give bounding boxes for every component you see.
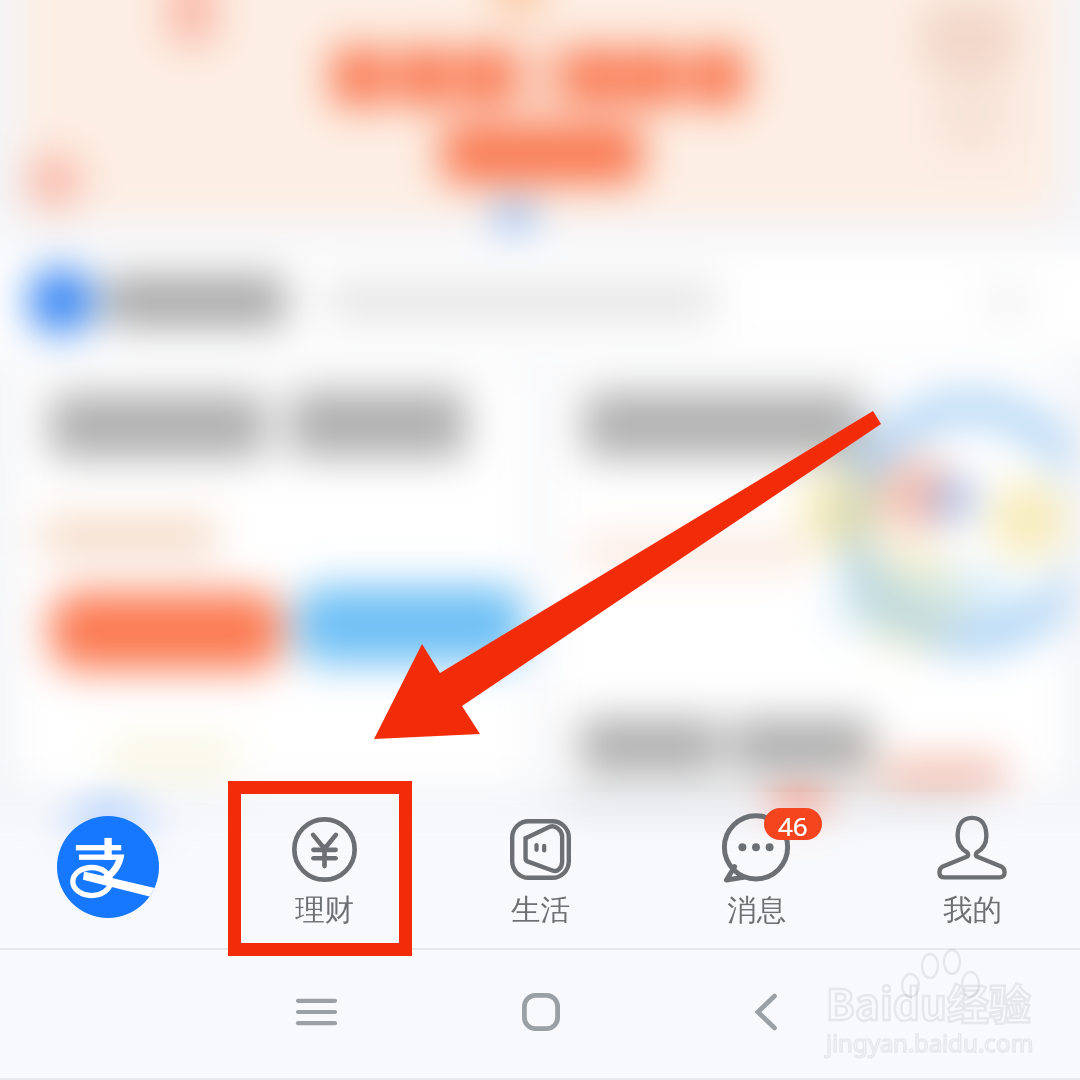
staticText: 消息 — [727, 892, 786, 929]
staticText: 我的 — [943, 892, 1002, 929]
button[interactable]: 生活 — [432, 792, 648, 950]
button[interactable]: Alipay home — [0, 792, 216, 950]
button[interactable]: 46 — [648, 792, 864, 950]
button[interactable]: Recent apps — [270, 966, 362, 1058]
button[interactable]: 我的 — [864, 792, 1080, 950]
staticText: 生活 — [511, 892, 570, 929]
button[interactable]: 理财 — [216, 792, 432, 950]
button[interactable]: Home — [495, 966, 587, 1058]
button[interactable]: Back — [721, 966, 813, 1058]
staticText: 46 — [778, 808, 808, 840]
staticText: 理财 — [295, 892, 354, 929]
